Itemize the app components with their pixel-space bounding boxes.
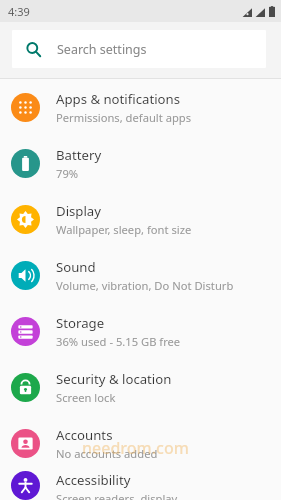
- staticText: No accounts added: [56, 446, 158, 461]
- staticText: 4:39: [8, 4, 30, 19]
- staticText: needrom.com: [82, 437, 189, 459]
- staticText: Apps & notifications: [56, 90, 181, 108]
- staticText: Volume, vibration, Do Not Disturb: [56, 278, 234, 293]
- staticText: Security & location: [56, 370, 172, 388]
- staticText: Accounts: [56, 426, 113, 444]
- button[interactable]: Apps & notifications: [0, 79, 281, 135]
- button[interactable]: Storage: [0, 303, 281, 359]
- staticText: Battery: [56, 146, 102, 164]
- staticText: Sound: [56, 258, 96, 276]
- button[interactable]: Search settings: [12, 30, 266, 68]
- staticText: Wallpaper, sleep, font size: [56, 222, 192, 237]
- staticText: Permissions, default apps: [56, 110, 192, 125]
- staticText: Screen lock: [56, 390, 116, 405]
- button[interactable]: Security & location: [0, 359, 281, 415]
- button[interactable]: Accessibility: [0, 471, 281, 500]
- staticText: Search settings: [57, 41, 147, 58]
- staticText: 79%: [56, 166, 79, 181]
- button[interactable]: Sound: [0, 247, 281, 303]
- staticText: 36% used - 5.15 GB free: [56, 334, 181, 349]
- staticText: Accessibility: [56, 471, 131, 489]
- button[interactable]: Battery: [0, 135, 281, 191]
- staticText: Screen readers, display: [56, 491, 178, 500]
- button[interactable]: Display: [0, 191, 281, 247]
- button[interactable]: Accounts: [0, 415, 281, 471]
- staticText: Display: [56, 202, 101, 220]
- staticText: Storage: [56, 314, 105, 332]
